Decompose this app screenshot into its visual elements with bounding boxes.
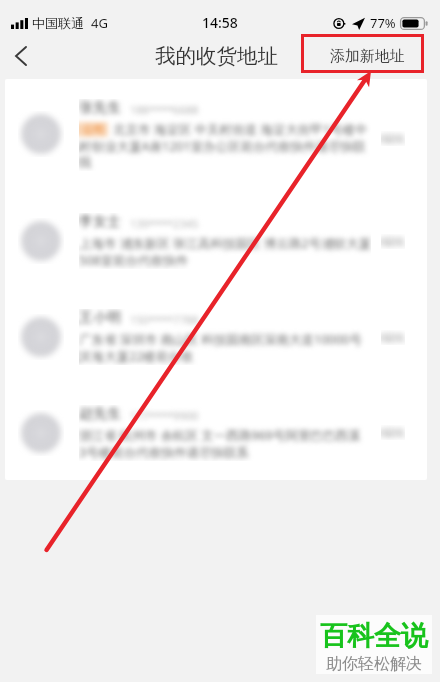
staticText: 张先生 bbox=[79, 99, 121, 117]
staticText: 139****2345 bbox=[130, 216, 199, 231]
staticText: 北京市 海淀区 中关村街道 海淀大街甲1号楼中关 bbox=[113, 121, 371, 138]
button[interactable]: 赵先生 bbox=[5, 385, 427, 480]
button[interactable]: 添加新地址 bbox=[322, 39, 413, 74]
staticText: 150****7788 bbox=[130, 312, 199, 327]
staticText: 编辑 bbox=[381, 425, 405, 440]
staticText: 村创业大厦A座1201室办公区前台代收快件请尽快联系 bbox=[79, 138, 371, 155]
button[interactable]: 张先生 bbox=[5, 84, 427, 193]
staticText: 浙江省 杭州市 余杭区 文一西路969号阿里巴巴西溪园区 bbox=[79, 427, 371, 444]
staticText: 上海市 浦东新区 张江高科技园区 博云路2号浦软大厦A座 bbox=[79, 235, 371, 252]
staticText: 李女士 bbox=[79, 213, 121, 231]
staticText: 百科全说 bbox=[320, 619, 428, 653]
staticText: 赵先生 bbox=[79, 405, 121, 423]
staticText: 编辑 bbox=[381, 131, 405, 146]
staticText: 508室前台代收快件 bbox=[79, 252, 188, 269]
staticText: 我的收货地址 bbox=[155, 43, 278, 69]
staticText: 177****9900 bbox=[130, 408, 199, 423]
button[interactable]: 王小明 bbox=[5, 289, 427, 385]
staticText: 公司 bbox=[83, 123, 104, 136]
staticText: 14:58 bbox=[202, 13, 238, 32]
staticText: 编辑 bbox=[381, 234, 405, 249]
staticText: 添加新地址 bbox=[330, 47, 405, 66]
staticText: 188****6688 bbox=[130, 102, 199, 117]
staticText: 滨海大厦22楼前台收 bbox=[79, 348, 194, 365]
staticText: 王小明 bbox=[79, 309, 121, 327]
button[interactable]: Back bbox=[0, 34, 43, 78]
staticText: 中国联通 bbox=[32, 15, 84, 31]
staticText: 编辑 bbox=[381, 330, 405, 345]
button[interactable]: 李女士 bbox=[5, 193, 427, 289]
staticText: 助你轻松解决 bbox=[326, 654, 422, 674]
staticText: 我 bbox=[79, 155, 92, 171]
staticText: 4G bbox=[91, 14, 108, 32]
staticText: 广东省 深圳市 南山区 科技园南区深南大道10000号腾讯 bbox=[79, 331, 371, 348]
staticText: 3号楼前台代收快件请尽快联系 bbox=[79, 444, 249, 461]
staticText: 77% bbox=[370, 14, 396, 32]
